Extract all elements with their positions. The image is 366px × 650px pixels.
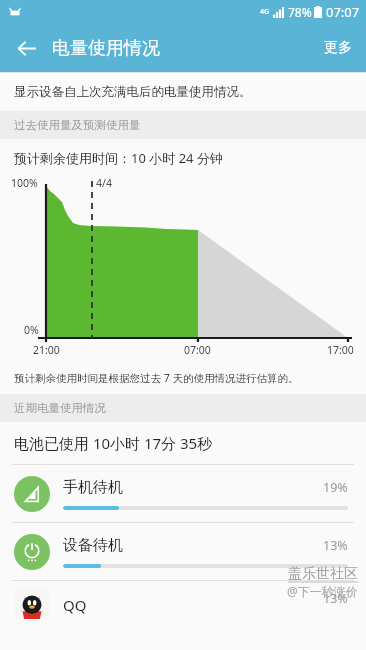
staticText: 电量使用情况 <box>52 37 160 60</box>
staticText: 盖乐世社区 <box>288 565 358 583</box>
staticText: 13% <box>323 590 348 607</box>
button[interactable]: QQ <box>0 581 366 621</box>
staticText: 19% <box>323 479 348 496</box>
button[interactable]: 更多 <box>310 24 366 72</box>
button[interactable]: 设备待机 <box>0 523 366 580</box>
button[interactable]: Back <box>6 28 46 68</box>
staticText: 4G <box>260 7 270 17</box>
staticText: 17:00 <box>327 343 354 357</box>
staticText: 100% <box>11 176 38 190</box>
staticText: 预计剩余使用时间是根据您过去 7 天的使用情况进行估算的。 <box>14 371 299 385</box>
staticText: 0% <box>24 323 39 337</box>
staticText: 电池已使用 10小时 17分 35秒 <box>14 433 213 453</box>
staticText: 设备待机 <box>63 536 123 555</box>
staticText: 13% <box>323 537 348 554</box>
staticText: 过去使用量及预测使用量 <box>14 118 141 132</box>
staticText: 21:00 <box>33 343 60 357</box>
staticText: 07:00 <box>184 343 211 357</box>
staticText: QQ <box>63 595 87 615</box>
staticText: 更多 <box>324 39 352 57</box>
staticText: 78% <box>288 4 312 20</box>
staticText: 近期电量使用情况 <box>14 401 106 415</box>
staticText: 显示设备自上次充满电后的电量使用情况。 <box>14 84 252 100</box>
button[interactable]: 手机待机 <box>0 465 366 522</box>
staticText: 手机待机 <box>63 478 123 497</box>
staticText: @下一秒涨价 <box>287 583 358 599</box>
staticText: 预计剩余使用时间：10 小时 24 分钟 <box>14 149 223 167</box>
staticText: 07:07 <box>326 3 360 21</box>
staticText: 4/4 <box>96 176 112 190</box>
